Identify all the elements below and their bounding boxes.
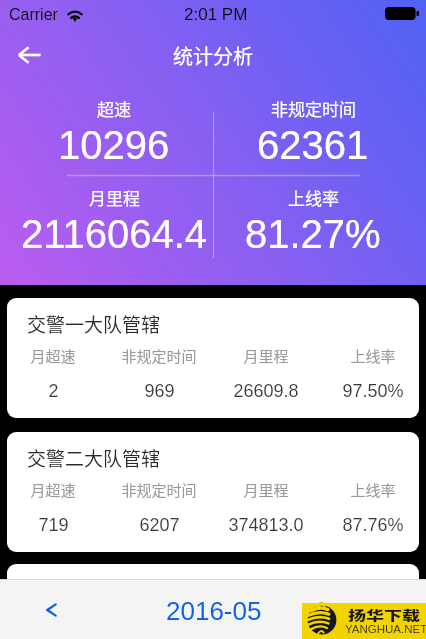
staticText: 非规定时间 <box>271 96 356 121</box>
staticText: 扬华下载 <box>348 605 420 624</box>
button[interactable] <box>7 564 419 579</box>
button[interactable]: 超速 <box>15 96 213 176</box>
staticText: 上线率 <box>288 185 339 210</box>
staticText: 上线率 <box>350 345 396 367</box>
staticText: 交警二大队管辖 <box>27 444 161 472</box>
staticText: 81.27% <box>245 212 381 257</box>
staticText: 2116064.4 <box>21 212 208 257</box>
staticText: 87.76% <box>342 515 404 535</box>
staticText: 月里程 <box>243 345 289 367</box>
staticText: 2:01 PM <box>184 5 248 24</box>
staticText: 6207 <box>139 515 180 535</box>
staticText: 26609.8 <box>233 381 299 401</box>
staticText: Carrier <box>9 6 58 24</box>
staticText: 2016-05 <box>166 596 262 625</box>
staticText: 374813.0 <box>228 515 304 535</box>
staticText: 月里程 <box>243 479 289 501</box>
button[interactable]: 交警一大队管辖 <box>7 298 419 418</box>
button[interactable]: Back <box>8 34 50 76</box>
staticText: 统计分析 <box>173 41 253 70</box>
staticText: YANGHUA.NET <box>345 623 426 636</box>
button[interactable]: 上线率 <box>214 185 412 265</box>
staticText: 超速 <box>97 96 131 121</box>
button[interactable]: 交警二大队管辖 <box>7 432 419 552</box>
staticText: 62361 <box>257 123 369 168</box>
staticText: 2 <box>48 381 59 401</box>
staticText: 月超速 <box>30 345 76 367</box>
button[interactable]: 2016-05 <box>154 581 274 639</box>
staticText: 97.50% <box>342 381 404 401</box>
staticText: 上线率 <box>350 479 396 501</box>
staticText: 月里程 <box>89 185 140 210</box>
staticText: 969 <box>144 381 175 401</box>
staticText: 10296 <box>58 123 170 168</box>
staticText: 交警一大队管辖 <box>27 310 161 338</box>
staticText: 非规定时间 <box>121 479 197 501</box>
staticText: 非规定时间 <box>121 345 197 367</box>
button[interactable]: 月里程 <box>15 185 213 265</box>
other: Wi-Fi <box>67 7 83 19</box>
button[interactable]: 非规定时间 <box>214 96 412 176</box>
staticText: 719 <box>38 515 69 535</box>
button[interactable]: Previous month <box>21 581 81 639</box>
other: Battery full <box>385 7 419 20</box>
staticText: 月超速 <box>30 479 76 501</box>
